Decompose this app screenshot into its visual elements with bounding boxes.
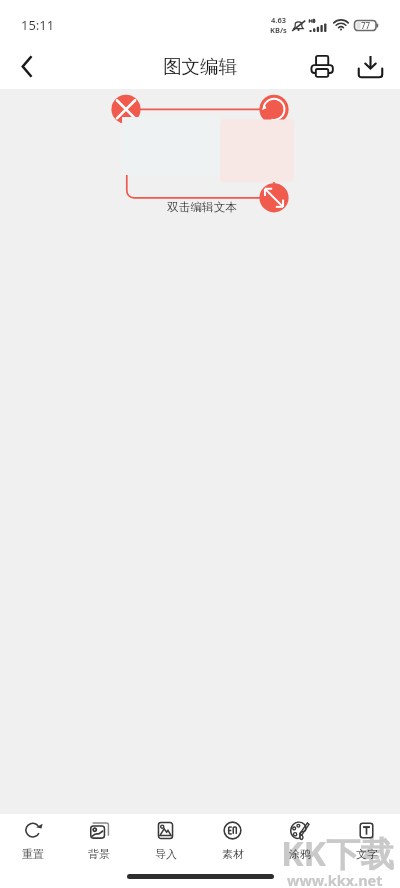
button[interactable]: Print (298, 44, 346, 89)
button[interactable]: 涂鸦 (266, 814, 333, 866)
button[interactable]: Download (346, 44, 394, 89)
staticText: www.kkx.net (287, 870, 383, 888)
staticText: 涂鸦 (289, 847, 311, 861)
staticText: KK下载 (281, 830, 395, 876)
staticText: 4.63 (271, 15, 286, 25)
staticText: 77 (361, 20, 371, 31)
staticText: 文字 (356, 847, 378, 861)
button[interactable]: 文字 (333, 814, 400, 866)
staticText: KB/s (270, 25, 287, 35)
staticText: 重置 (22, 847, 44, 861)
button[interactable]: Rotate (259, 95, 289, 125)
staticText: 图文编辑 (163, 55, 237, 78)
staticText: 15:11 (21, 16, 55, 34)
button[interactable]: 素材 (199, 814, 266, 866)
button[interactable]: 导入 (132, 814, 199, 866)
staticText: 背景 (88, 847, 110, 861)
staticText: 素材 (222, 847, 244, 861)
button[interactable]: 重置 (0, 814, 66, 866)
button[interactable]: Delete (111, 95, 141, 125)
button[interactable]: Back (0, 44, 52, 89)
staticText: 双击编辑文本 (167, 200, 238, 215)
button[interactable]: Resize (259, 183, 289, 213)
button[interactable]: 背景 (66, 814, 132, 866)
staticText: 导入 (155, 847, 177, 861)
